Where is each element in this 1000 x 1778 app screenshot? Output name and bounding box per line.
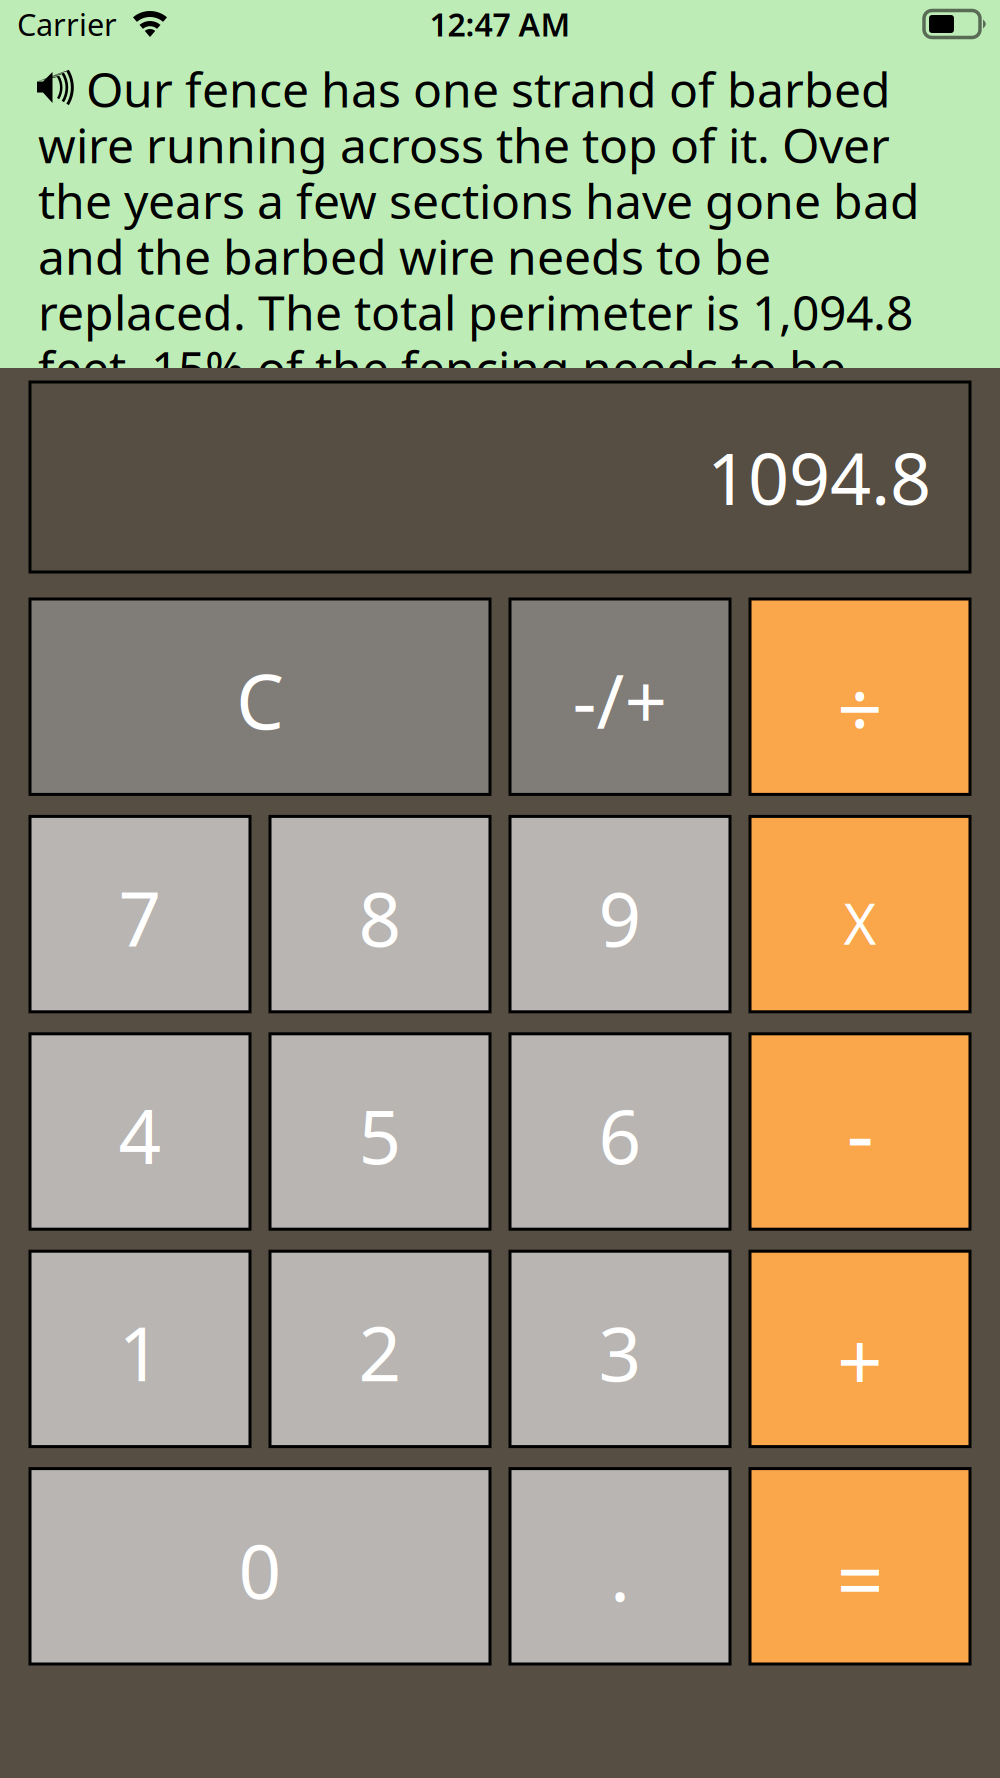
- button[interactable]: 8: [270, 816, 490, 1012]
- staticText: .: [610, 1523, 630, 1622]
- staticText: 1094.8: [707, 429, 931, 525]
- button[interactable]: 5: [270, 1034, 490, 1229]
- staticText: C: [236, 649, 284, 750]
- button[interactable]: X: [750, 816, 970, 1012]
- staticText: Our fence has one strand of barbed wire …: [38, 57, 920, 455]
- staticText: 12:47 AM: [429, 3, 570, 45]
- button[interactable]: -: [750, 1034, 970, 1229]
- staticText: -: [846, 1076, 873, 1189]
- staticText: 2: [358, 1303, 401, 1402]
- staticText: 3: [598, 1303, 641, 1402]
- staticText: Carrier: [17, 4, 117, 44]
- staticText: ÷: [837, 655, 883, 761]
- staticText: 4: [118, 1085, 161, 1185]
- button[interactable]: 6: [510, 1034, 730, 1229]
- button[interactable]: -/+: [510, 599, 730, 794]
- button[interactable]: =: [750, 1469, 970, 1664]
- button[interactable]: ÷: [750, 599, 970, 794]
- button[interactable]: .: [510, 1469, 730, 1664]
- staticText: 9: [598, 868, 641, 967]
- staticText: 5: [358, 1085, 401, 1185]
- staticText: 6: [598, 1085, 641, 1185]
- button[interactable]: 1: [30, 1251, 250, 1447]
- staticText: 7: [118, 868, 161, 967]
- staticText: 0: [238, 1520, 281, 1619]
- button[interactable]: 0: [30, 1469, 490, 1664]
- button[interactable]: 4: [30, 1034, 250, 1229]
- staticText: 1: [118, 1303, 161, 1402]
- button[interactable]: C: [30, 599, 490, 794]
- staticText: =: [836, 1523, 883, 1633]
- button[interactable]: +: [750, 1251, 970, 1447]
- button[interactable]: 2: [270, 1251, 490, 1447]
- staticText: -/+: [572, 650, 667, 749]
- staticText: +: [837, 1307, 883, 1413]
- button[interactable]: 9: [510, 816, 730, 1012]
- staticText: X: [843, 886, 876, 960]
- button[interactable]: 3: [510, 1251, 730, 1447]
- staticText: 8: [358, 868, 401, 967]
- button[interactable]: 7: [30, 816, 250, 1012]
